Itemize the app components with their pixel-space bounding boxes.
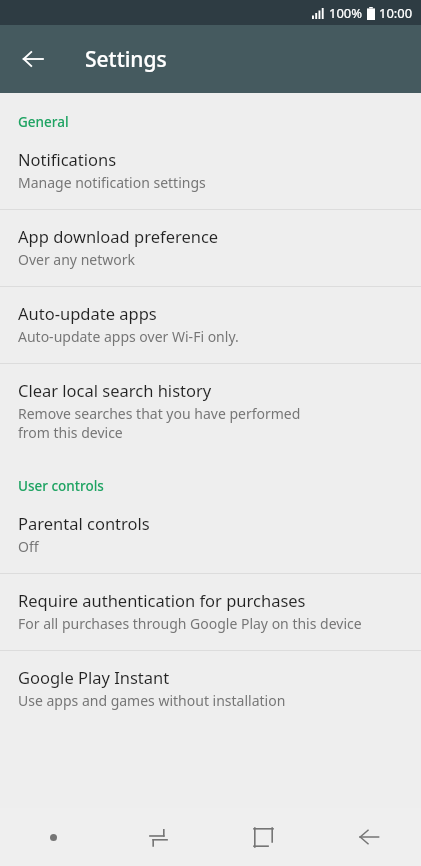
staticText: Remove searches that you have performed <box>18 404 301 423</box>
button[interactable]: Recent apps <box>106 808 211 866</box>
button[interactable]: App download preference <box>0 210 421 286</box>
button[interactable]: Auto-update apps <box>0 287 421 363</box>
button[interactable]: Back <box>10 36 56 82</box>
staticText: Manage notification settings <box>18 173 206 192</box>
staticText: For all purchases through Google Play on… <box>18 614 362 633</box>
button[interactable]: Notifications <box>0 133 421 209</box>
staticText: App download preference <box>18 225 219 247</box>
button[interactable]: Require authentication for purchases <box>0 574 421 650</box>
staticText: Over any network <box>18 250 135 269</box>
staticText: 10:00 <box>379 4 413 22</box>
staticText: User controls <box>18 477 421 495</box>
button[interactable]: Parental controls <box>0 497 421 573</box>
button[interactable]: Hide navigation bar <box>0 808 106 866</box>
staticText: Use apps and games without installation <box>18 691 286 710</box>
staticText: Auto-update apps <box>18 302 157 324</box>
staticText: from this device <box>18 423 123 442</box>
staticText: Clear local search history <box>18 379 212 401</box>
button[interactable]: Home <box>211 808 316 866</box>
staticText: Off <box>18 537 39 556</box>
staticText: Settings <box>85 45 167 74</box>
staticText: Google Play Instant <box>18 666 170 688</box>
button[interactable]: Back <box>316 808 421 866</box>
staticText: Parental controls <box>18 512 150 534</box>
staticText: 100% <box>329 4 363 22</box>
staticText: Auto-update apps over Wi-Fi only. <box>18 327 239 346</box>
staticText: General <box>18 113 421 131</box>
staticText: Require authentication for purchases <box>18 589 306 611</box>
button[interactable]: Clear local search history <box>0 364 421 459</box>
staticText: Notifications <box>18 148 117 170</box>
button[interactable]: Google Play Instant <box>0 651 421 727</box>
